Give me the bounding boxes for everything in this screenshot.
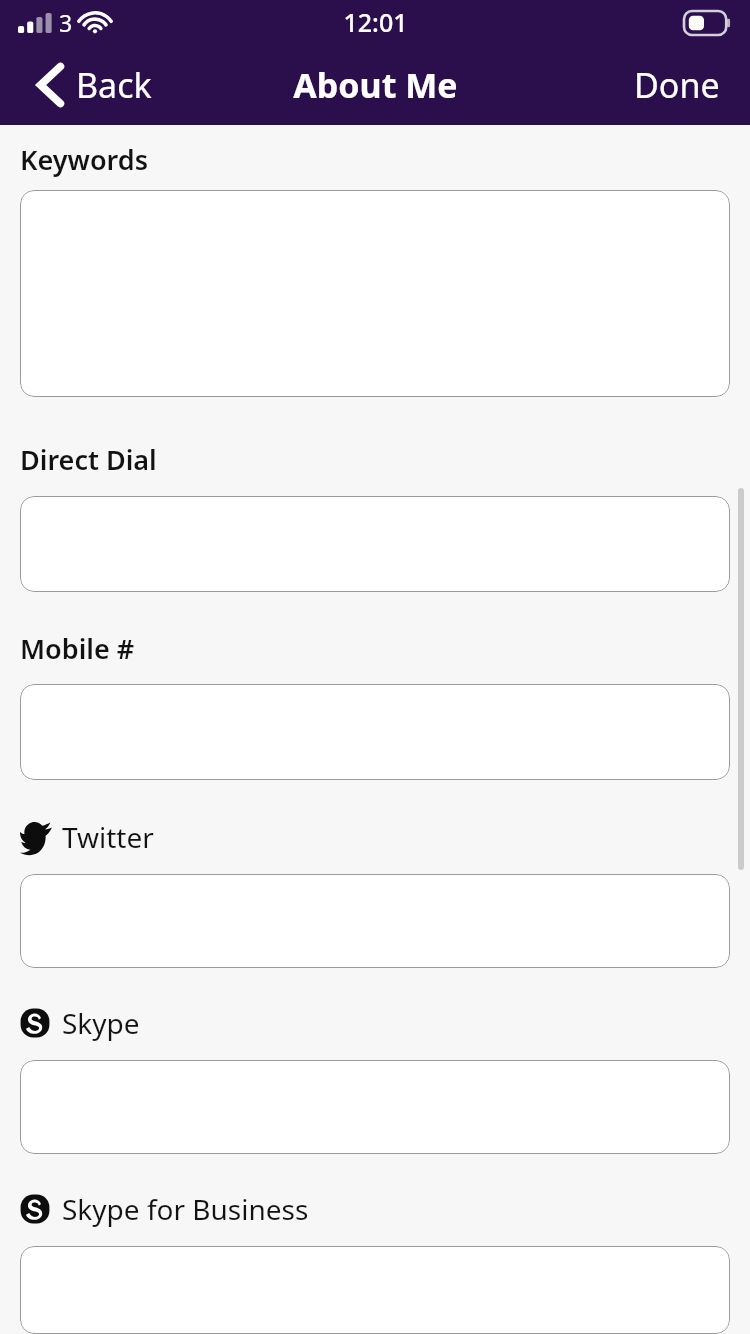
- staticText: About Me: [293, 62, 458, 108]
- button[interactable]: [20, 1060, 730, 1154]
- staticText: Keywords: [20, 141, 148, 178]
- staticText: Twitter: [62, 818, 154, 856]
- staticText: Skype for Business: [62, 1190, 309, 1228]
- staticText: Direct Dial: [20, 441, 157, 478]
- staticText: 3: [59, 7, 73, 38]
- button[interactable]: [20, 1246, 730, 1334]
- staticText: Back: [76, 62, 152, 108]
- button[interactable]: [20, 684, 730, 780]
- staticText: Mobile #: [20, 630, 135, 667]
- button[interactable]: Back: [38, 62, 152, 108]
- button[interactable]: Done: [626, 56, 728, 114]
- staticText: Skype: [62, 1004, 140, 1042]
- staticText: Done: [634, 62, 720, 108]
- other: Skype: [20, 1008, 50, 1038]
- other: Back: [38, 64, 64, 106]
- other: Twitter: [20, 821, 52, 853]
- button[interactable]: [20, 874, 730, 968]
- other: Skype: [20, 1194, 50, 1224]
- button[interactable]: [20, 190, 730, 397]
- button[interactable]: [20, 496, 730, 592]
- staticText: 12:01: [343, 5, 408, 39]
